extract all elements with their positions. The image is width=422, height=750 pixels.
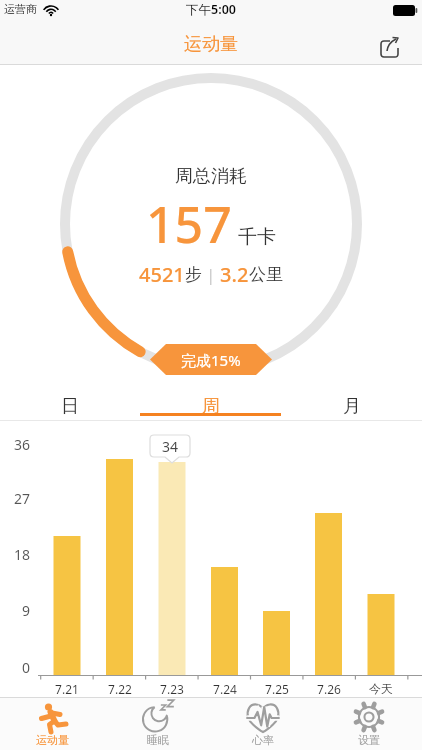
staticText: 今天 <box>356 681 406 696</box>
staticText: 0 <box>2 658 30 677</box>
staticText: 18 <box>2 545 30 564</box>
staticText: 9 <box>2 601 30 620</box>
button[interactable]: 设置 <box>316 697 422 750</box>
staticText: 下午5:00 <box>0 1 422 18</box>
staticText: 步 <box>185 264 202 285</box>
staticText: 27 <box>2 489 30 508</box>
button[interactable]: 月 <box>281 393 422 419</box>
button[interactable]: 运动量 <box>0 697 105 750</box>
button[interactable] <box>374 31 408 61</box>
staticText: 公里 <box>249 264 283 285</box>
staticText: 3.2 <box>220 261 249 288</box>
staticText: | <box>202 264 220 286</box>
staticText: 睡眠 <box>147 733 169 747</box>
staticText: 千卡 <box>238 225 276 249</box>
staticText: 34 <box>150 437 190 456</box>
button[interactable]: 心率 <box>210 697 316 750</box>
staticText: 7.25 <box>252 681 302 697</box>
staticText: 157 <box>146 190 232 258</box>
button[interactable]: 周 <box>140 393 281 419</box>
staticText: 7.26 <box>304 681 354 697</box>
staticText: 运动量 <box>36 733 69 747</box>
staticText: 36 <box>2 435 30 454</box>
staticText: 设置 <box>358 733 380 747</box>
staticText: 周总消耗 <box>0 165 422 188</box>
button[interactable]: 日 <box>0 393 140 419</box>
staticText: 心率 <box>252 733 274 747</box>
staticText: 运营商 <box>4 2 37 16</box>
staticText: 7.21 <box>42 681 92 697</box>
button[interactable]: 睡眠 <box>105 697 210 750</box>
staticText: 月 <box>343 395 361 418</box>
staticText: 7.24 <box>200 681 250 697</box>
staticText: 日 <box>61 395 79 418</box>
staticText: 完成15% <box>181 350 241 370</box>
staticText: 周 <box>202 395 220 418</box>
staticText: 7.22 <box>95 681 145 697</box>
staticText: 运动量 <box>0 33 422 56</box>
staticText: 7.23 <box>147 681 197 697</box>
staticText: 4521 <box>139 261 185 288</box>
